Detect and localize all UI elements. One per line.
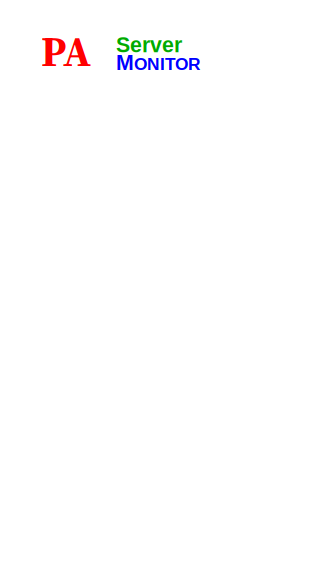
staticText: Server	[116, 33, 182, 57]
staticText: PA	[41, 22, 91, 80]
staticText: MONITOR	[116, 51, 201, 74]
